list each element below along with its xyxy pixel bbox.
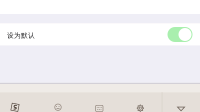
button[interactable]: Keyboard [94,103,104,112]
button[interactable]: Settings [135,103,145,112]
button[interactable]: 设为默认 [0,23,200,45]
button[interactable]: Sogou input [10,102,20,112]
button[interactable]: Hide keyboard [176,104,186,112]
staticText: 设为默认 [7,31,35,40]
button[interactable]: Emoji [53,102,63,112]
